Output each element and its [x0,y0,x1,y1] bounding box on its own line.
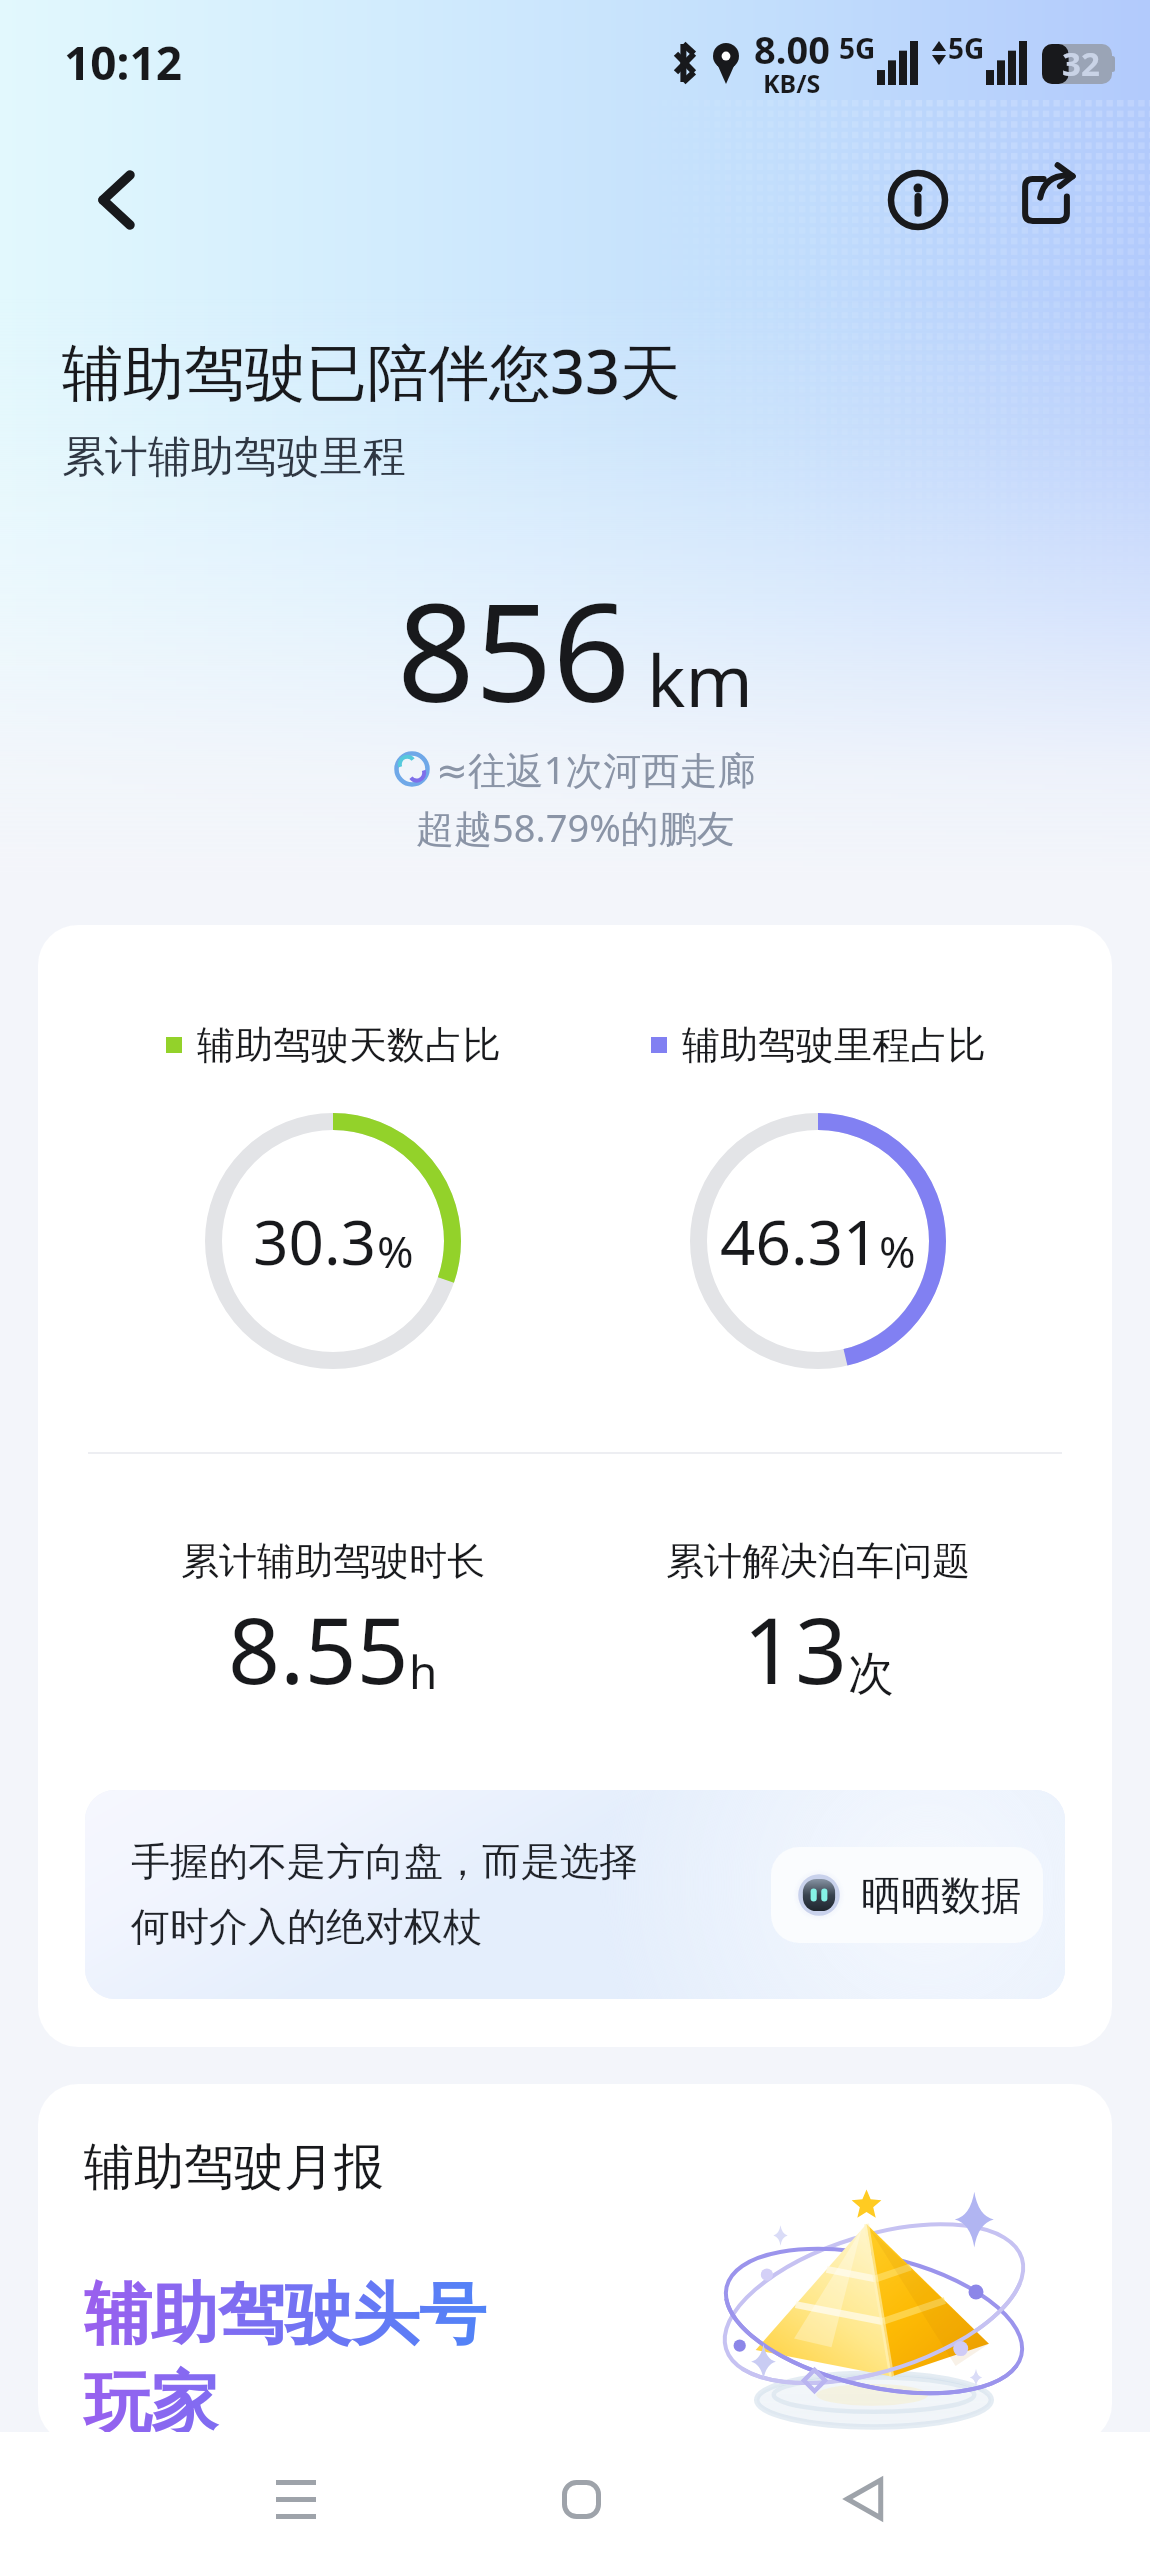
button[interactable]: Back [799,2434,929,2564]
staticText: % [879,1221,916,1281]
staticText: 累计解决泊车问题 [666,1537,970,1585]
button[interactable]: Info [860,142,976,258]
staticText: h [409,1640,438,1703]
staticText: 次 [848,1645,894,1703]
staticText: % [377,1221,414,1281]
staticText: ≈往返1次河西走廊 [436,743,756,795]
staticText: 13 [743,1587,848,1711]
button[interactable]: 晒晒数据 [771,1847,1043,1943]
staticText: 46.31 [720,1199,879,1283]
staticText: 累计辅助驾驶里程 [62,430,406,484]
staticText: 辅助驾驶里程占比 [682,1021,986,1069]
staticText: 8.00 [754,23,830,75]
button[interactable]: Recents [231,2434,361,2564]
staticText: 5G [948,29,985,67]
button[interactable]: Back [58,142,174,258]
staticText: 手握的不是方向盘，而是选择 何时介入的绝对权杖 [131,1837,638,1952]
staticText: 超越58.79%的鹏友 [416,801,735,853]
staticText: 10:12 [64,31,183,94]
button[interactable]: Home [516,2434,646,2564]
staticText: 8.55 [228,1587,409,1711]
staticText: 辅助驾驶头号 玩家 [84,2272,486,2444]
staticText: 30.3 [253,1199,377,1283]
staticText: 累计辅助驾驶时长 [181,1537,485,1585]
staticText: 辅助驾驶已陪伴您33天 [62,329,681,412]
staticText: 晒晒数据 [861,1870,1021,1920]
staticText: km [647,630,753,728]
button[interactable]: Share [988,142,1104,258]
staticText: 辅助驾驶月报 [84,2136,384,2199]
staticText: 辅助驾驶天数占比 [197,1021,501,1069]
staticText: 5G [839,29,876,67]
staticText: KB/S [763,66,821,100]
staticText: 856 [397,557,631,742]
staticText: 32 [1062,41,1100,86]
